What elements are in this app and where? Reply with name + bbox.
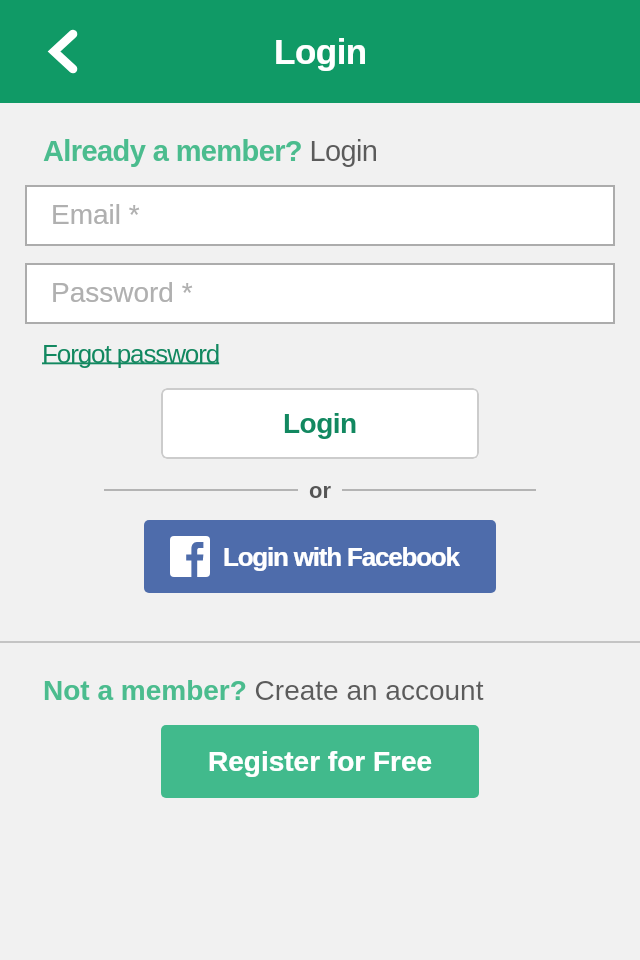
button[interactable]: Register for Free — [161, 725, 479, 798]
staticText: Forgot password — [42, 339, 220, 368]
staticText: Login — [283, 408, 357, 439]
staticText: Email * — [51, 199, 140, 230]
button[interactable]: Forgot password — [42, 339, 220, 368]
staticText: or — [309, 478, 331, 502]
staticText: Login with Facebook — [223, 542, 459, 571]
staticText: Register for Free — [208, 746, 433, 777]
staticText: Password * — [51, 277, 193, 308]
button[interactable]: Password * — [25, 263, 615, 324]
staticText: Not a member? Create an account — [43, 675, 484, 706]
staticText: Already a member? Login — [43, 135, 378, 167]
button[interactable]: Login with Facebook — [144, 520, 496, 593]
button[interactable]: Back — [0, 0, 103, 103]
staticText: Login — [274, 32, 367, 71]
button[interactable]: Login — [161, 388, 479, 459]
button[interactable]: Email * — [25, 185, 615, 246]
